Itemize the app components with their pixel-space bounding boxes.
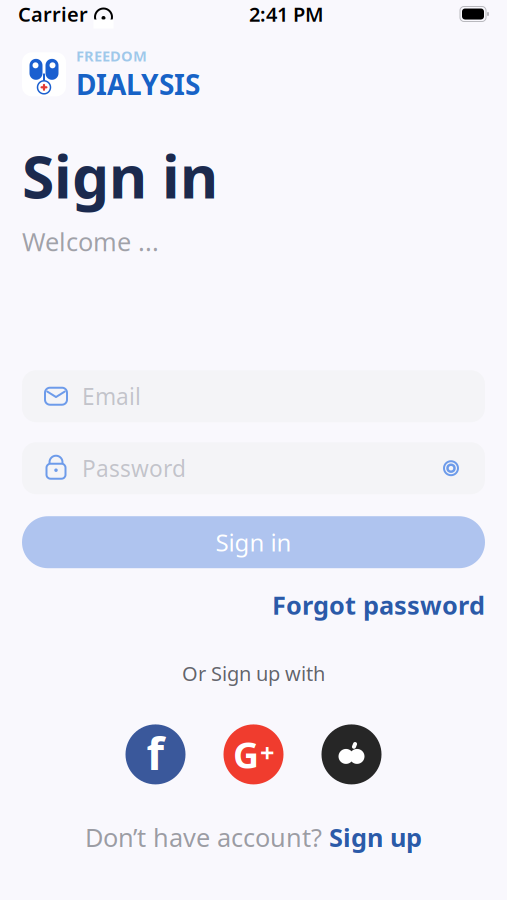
button[interactable]: Show password xyxy=(439,458,463,478)
button[interactable]: Sign up with Apple xyxy=(321,724,381,784)
button[interactable]: Sign up with Facebook xyxy=(125,724,185,784)
staticText: Don’t have account? xyxy=(85,820,322,854)
button[interactable]: Sign up with Google xyxy=(223,724,283,784)
staticText: f xyxy=(146,722,164,782)
staticText: 2:41 PM xyxy=(249,1,324,27)
staticText: Sign in xyxy=(215,526,291,558)
button[interactable]: Sign in xyxy=(22,516,485,568)
button[interactable]: Forgot password xyxy=(272,588,485,622)
staticText: Or Sign up with xyxy=(182,660,325,686)
button[interactable]: Don’t have account? xyxy=(0,820,507,854)
staticText: FREEDOM xyxy=(76,46,147,65)
staticText: Password xyxy=(82,453,186,483)
staticText: Carrier xyxy=(18,1,88,27)
staticText: Forgot password xyxy=(272,588,485,622)
staticText: + xyxy=(260,736,274,769)
staticText: Welcome ... xyxy=(22,225,159,258)
staticText: DIALYSIS xyxy=(76,65,200,103)
staticText: Sign in xyxy=(22,137,218,215)
staticText: Email xyxy=(82,381,141,411)
staticText: G xyxy=(233,730,259,778)
staticText: Sign up xyxy=(329,820,422,854)
